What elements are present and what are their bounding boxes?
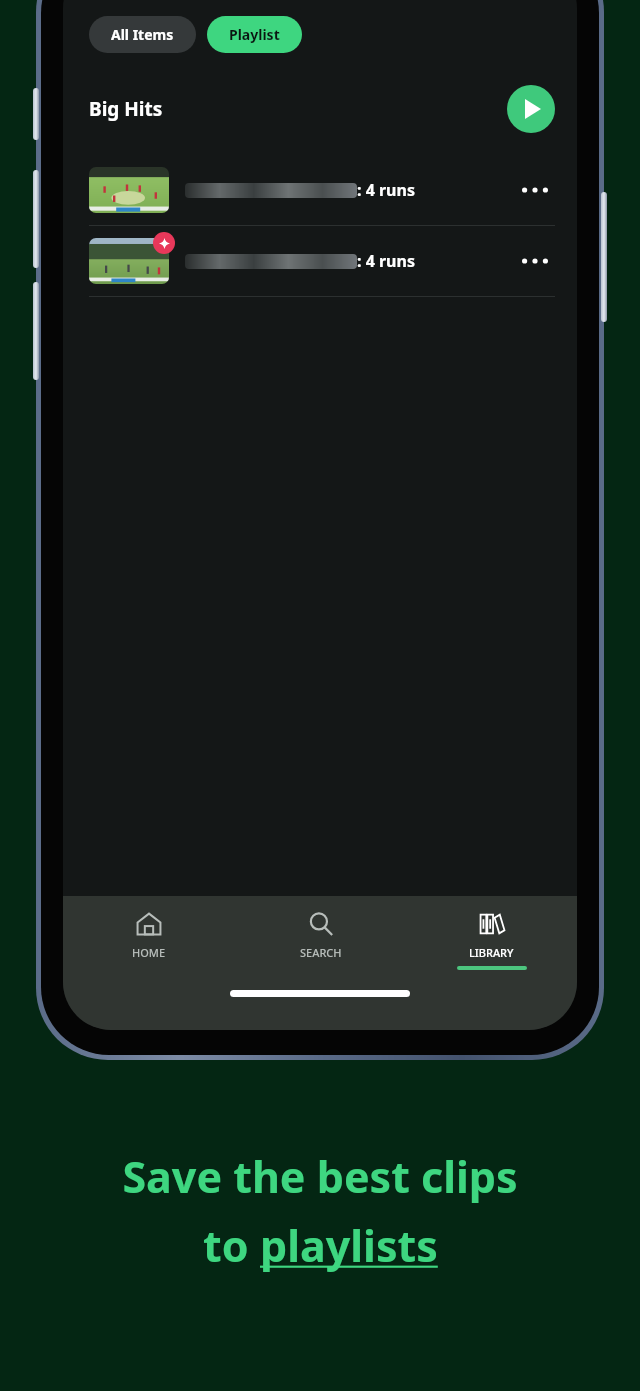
staticText: SEARCH [300, 945, 342, 960]
staticText: Big Hits [89, 96, 163, 122]
staticText: : 4 runs [357, 250, 415, 272]
button[interactable]: All Items [89, 16, 196, 53]
button[interactable]: : 4 runs [63, 155, 577, 225]
button[interactable]: HOME [63, 896, 235, 984]
staticText: playlists [260, 1216, 438, 1275]
button[interactable]: Play all [507, 85, 555, 133]
button[interactable]: SEARCH [235, 896, 406, 984]
button[interactable]: More options [515, 241, 555, 281]
staticText: HOME [132, 945, 166, 960]
button[interactable]: More options [515, 170, 555, 210]
button[interactable]: Playlist [207, 16, 302, 53]
button[interactable]: : 4 runs [63, 226, 577, 296]
staticText: Save the best clips [122, 1147, 518, 1206]
staticText: : 4 runs [357, 179, 415, 201]
staticText: All Items [111, 25, 174, 44]
staticText: Playlist [229, 25, 280, 44]
staticText: LIBRARY [469, 945, 514, 960]
button[interactable]: LIBRARY [406, 896, 577, 984]
staticText: to [203, 1216, 260, 1275]
